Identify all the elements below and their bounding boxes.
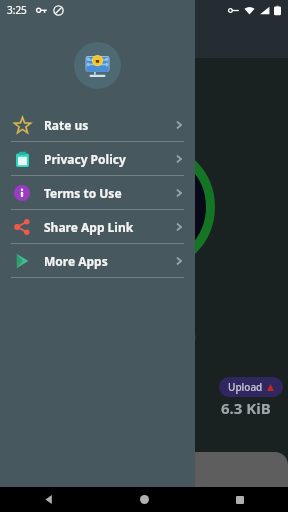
button[interactable]: Back <box>0 487 96 512</box>
button[interactable]: Terms to Use <box>0 176 195 209</box>
button[interactable]: More Apps <box>0 244 195 277</box>
button[interactable]: Recent apps <box>192 487 288 512</box>
button[interactable] <box>20 452 288 487</box>
staticText: Terms to Use <box>44 185 122 201</box>
staticText: Rate us <box>44 117 89 133</box>
staticText: Upload <box>228 380 263 394</box>
button[interactable]: Share App Link <box>0 210 195 243</box>
button[interactable]: Rate us <box>0 108 195 141</box>
staticText: 0 <box>183 321 197 352</box>
button[interactable]: Upload <box>219 377 283 397</box>
staticText: Privacy Policy <box>44 151 126 167</box>
button[interactable]: Privacy Policy <box>0 142 195 175</box>
staticText: 3:25 <box>7 3 27 17</box>
staticText: More Apps <box>44 253 108 269</box>
button[interactable]: Home <box>96 487 192 512</box>
staticText: 6.3 KiB <box>221 398 271 418</box>
staticText: Share App Link <box>44 219 134 235</box>
